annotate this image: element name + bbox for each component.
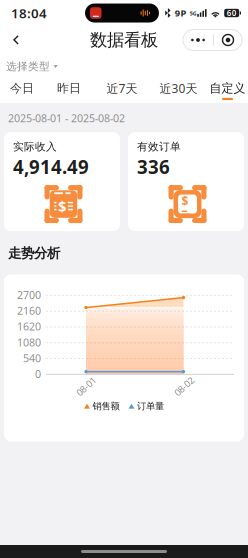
staticText: 有效订单 bbox=[137, 140, 181, 153]
staticText: 540 bbox=[23, 351, 41, 365]
staticText: 走势分析 bbox=[8, 245, 60, 261]
staticText: $ bbox=[181, 193, 188, 209]
staticText: 336 bbox=[137, 154, 170, 179]
staticText: 昨日 bbox=[57, 81, 81, 96]
button[interactable]: 今日 bbox=[0, 78, 44, 103]
button[interactable]: 有效订单 bbox=[128, 132, 244, 231]
staticText: 近7天 bbox=[106, 80, 137, 96]
staticText: 1620 bbox=[17, 319, 41, 334]
staticText: 18:04 bbox=[11, 4, 47, 22]
button[interactable]: More options bbox=[183, 29, 213, 50]
staticText: 60 bbox=[227, 8, 237, 18]
button[interactable]: 近7天 bbox=[94, 78, 150, 103]
button[interactable]: 实际收入 bbox=[4, 132, 120, 231]
button[interactable]: Back bbox=[0, 29, 27, 51]
staticText: 9 bbox=[175, 7, 180, 19]
button[interactable]: 选择类型 bbox=[0, 57, 64, 76]
staticText: 2025-08-01 - 2025-08-02 bbox=[8, 111, 125, 125]
staticText: 选择类型 bbox=[6, 60, 50, 73]
staticText: 08-02 bbox=[172, 380, 195, 393]
staticText: 自定义 bbox=[209, 81, 245, 96]
staticText: 近30天 bbox=[159, 80, 197, 96]
staticText: 数据看板 bbox=[90, 29, 158, 51]
button[interactable]: 自定义 bbox=[207, 78, 248, 103]
staticText: 5G bbox=[190, 10, 197, 17]
button[interactable]: 近30天 bbox=[150, 78, 207, 103]
button[interactable]: 昨日 bbox=[44, 78, 94, 103]
staticText: 销售额 bbox=[92, 400, 119, 412]
staticText: 实际收入 bbox=[13, 140, 57, 153]
staticText: P bbox=[181, 7, 187, 19]
staticText: 2700 bbox=[17, 288, 41, 302]
staticText: 08-01 bbox=[74, 380, 97, 393]
button[interactable]: Close bbox=[214, 29, 242, 50]
staticText: $ bbox=[58, 196, 66, 216]
staticText: 1080 bbox=[17, 335, 41, 349]
staticText: 订单量 bbox=[137, 400, 164, 412]
staticText: 0 bbox=[35, 367, 41, 381]
staticText: 2160 bbox=[17, 304, 41, 318]
staticText: 4,914.49 bbox=[13, 154, 89, 179]
staticText: 今日 bbox=[10, 81, 34, 96]
